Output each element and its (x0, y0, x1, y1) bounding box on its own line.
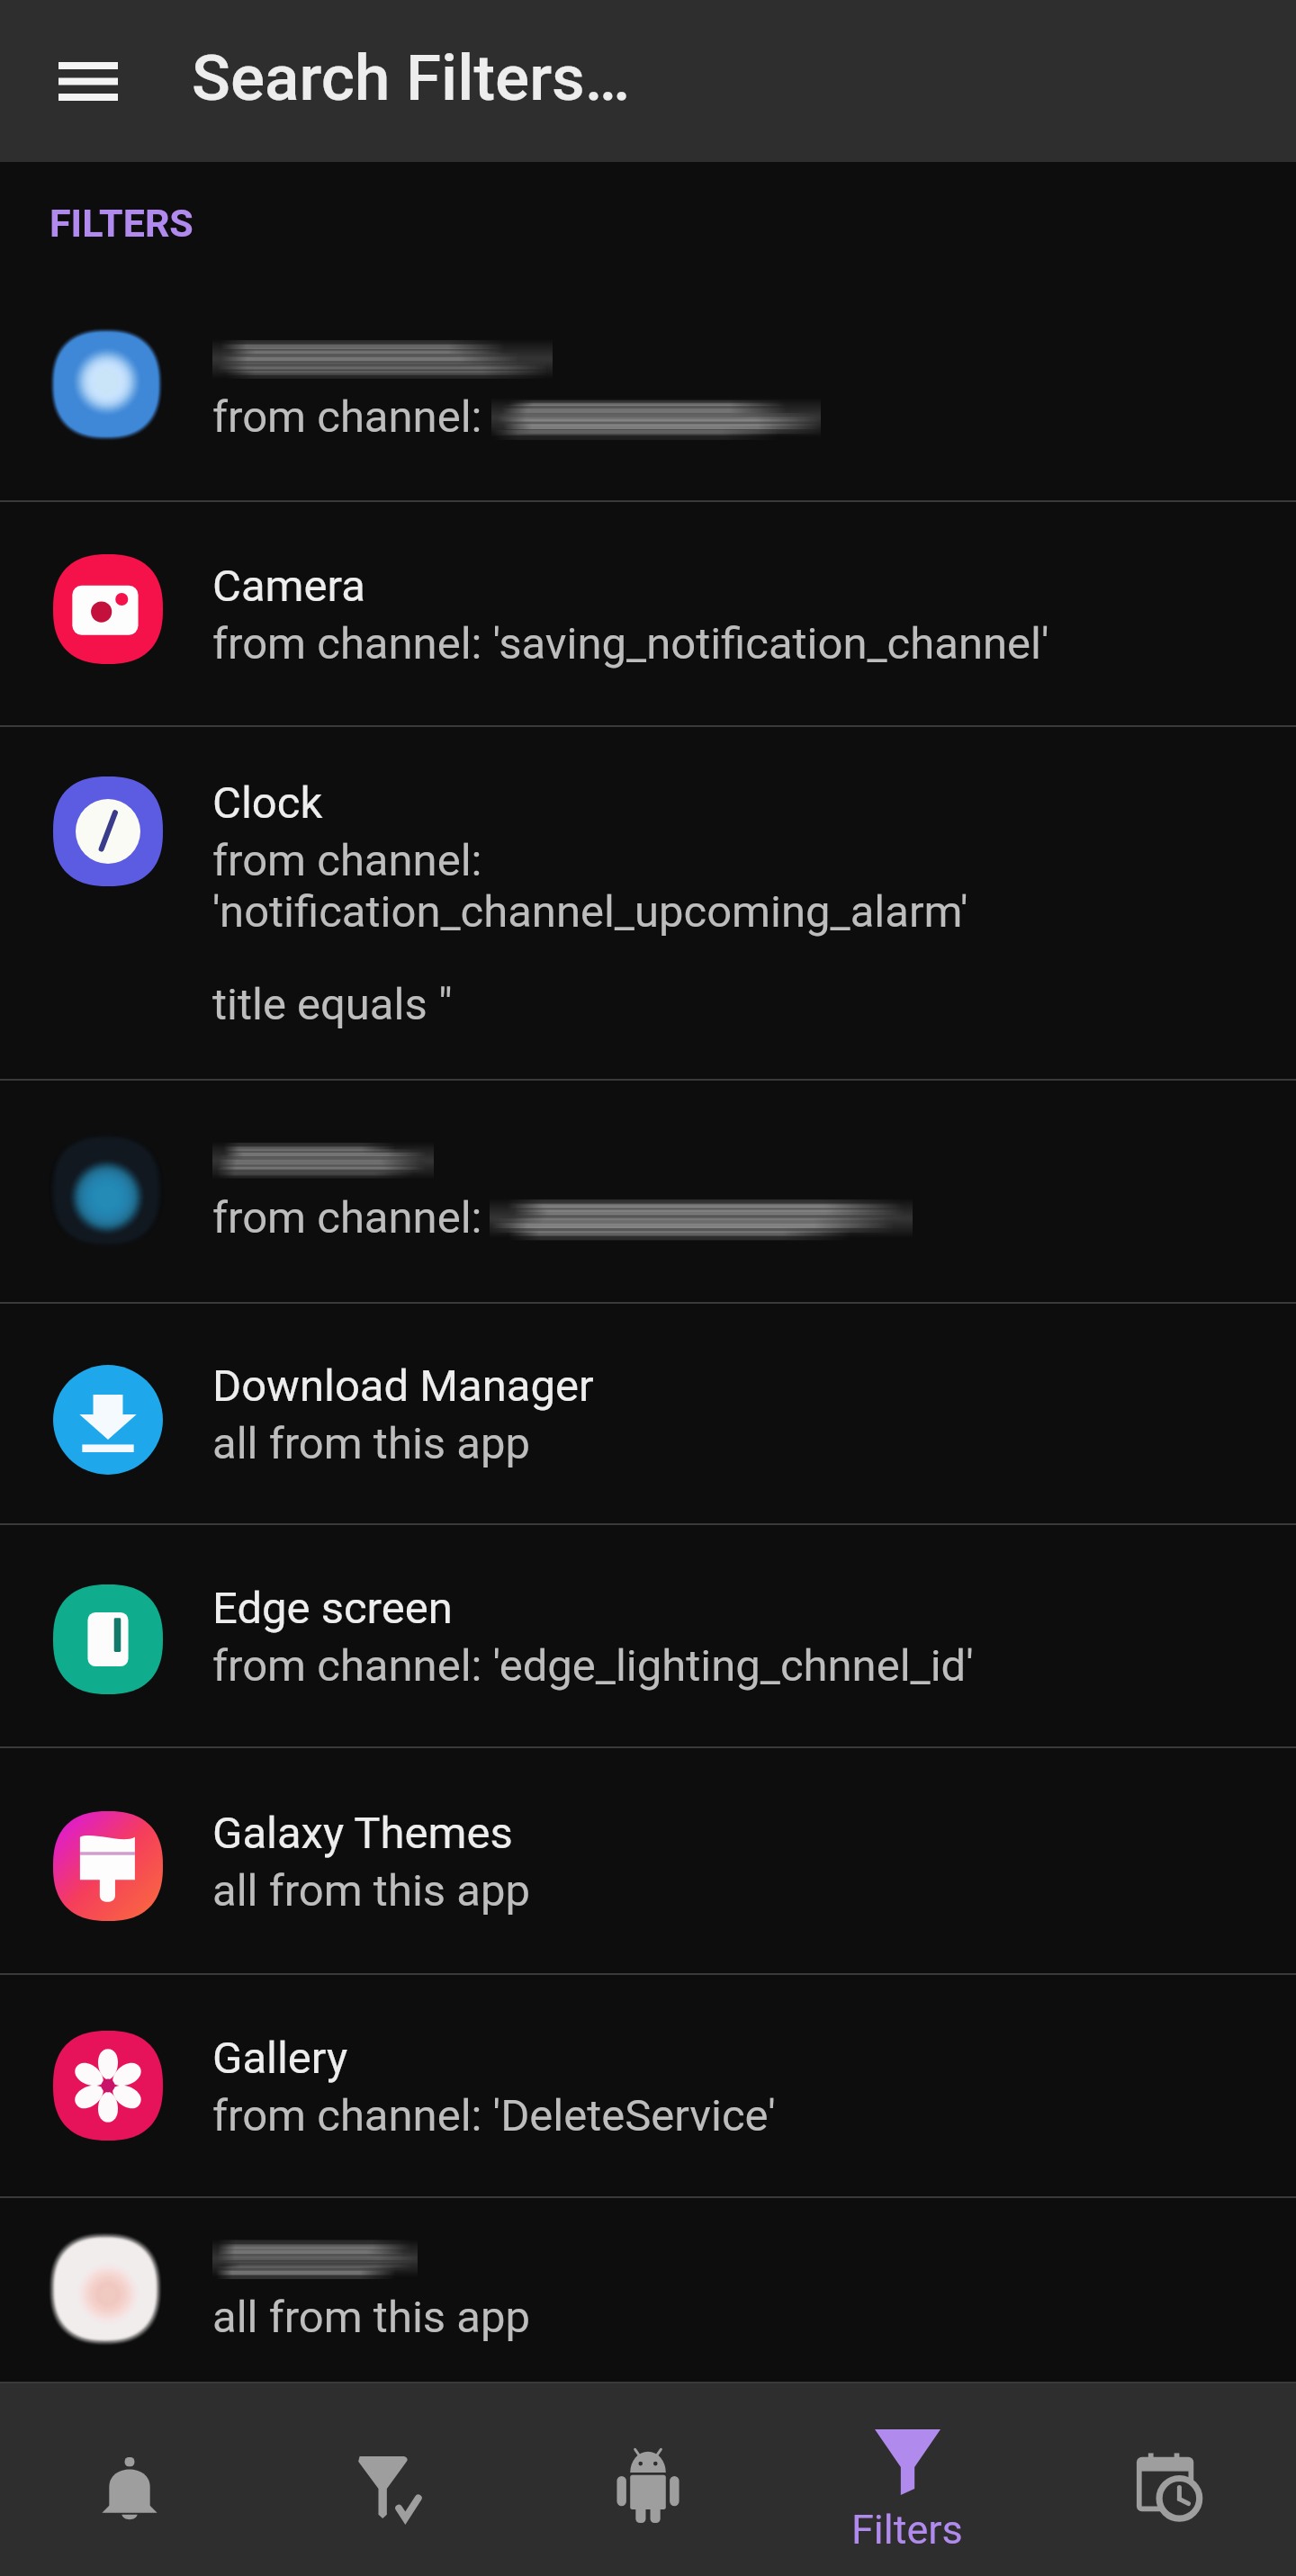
staticText: FILTERS (49, 201, 193, 246)
button[interactable]: Clock (0, 727, 1296, 1081)
staticText: Edge screen (212, 1583, 453, 1634)
button[interactable]: all from this app (0, 2198, 1296, 2383)
button[interactable]: Edge screen (0, 1525, 1296, 1748)
staticText: Download Manager (212, 1360, 594, 1412)
staticText: title equals " (212, 979, 453, 1030)
button[interactable]: from channel: (0, 279, 1296, 502)
button[interactable]: Download Manager (0, 1304, 1296, 1525)
button[interactable]: Camera (0, 502, 1296, 727)
staticText: from channel: 'edge_lighting_chnnel_id' (212, 1640, 974, 1692)
staticText: all from this app (212, 2292, 530, 2343)
button[interactable]: Apps (518, 2383, 778, 2576)
button[interactable]: Gallery (0, 1975, 1296, 2198)
staticText: Gallery (212, 2033, 348, 2084)
button[interactable]: History (1037, 2383, 1296, 2576)
button[interactable]: Applied filters (259, 2383, 518, 2576)
button[interactable]: Galaxy Themes (0, 1748, 1296, 1975)
staticText: Filters (851, 2506, 963, 2554)
staticText: from channel: 'saving_notification_chann… (212, 618, 1049, 669)
staticText: Search Filters… (192, 40, 630, 115)
staticText: from channel: (212, 835, 482, 886)
staticText: Camera (212, 561, 365, 612)
button[interactable]: from channel: (0, 1081, 1296, 1304)
staticText: from channel: 'DeleteService' (212, 2090, 776, 2141)
button[interactable]: Filters (778, 2383, 1037, 2576)
button[interactable]: Notifications (0, 2383, 259, 2576)
staticText: 'notification_channel_upcoming_alarm' (212, 886, 968, 938)
staticText: all from this app (212, 1865, 530, 1916)
button[interactable]: Open navigation menu (40, 32, 137, 130)
staticText: Galaxy Themes (212, 1808, 513, 1859)
staticText: all from this app (212, 1418, 530, 1469)
staticText: from channel: (212, 1192, 482, 1243)
staticText: from channel: (212, 391, 482, 443)
staticText: Clock (212, 777, 323, 829)
